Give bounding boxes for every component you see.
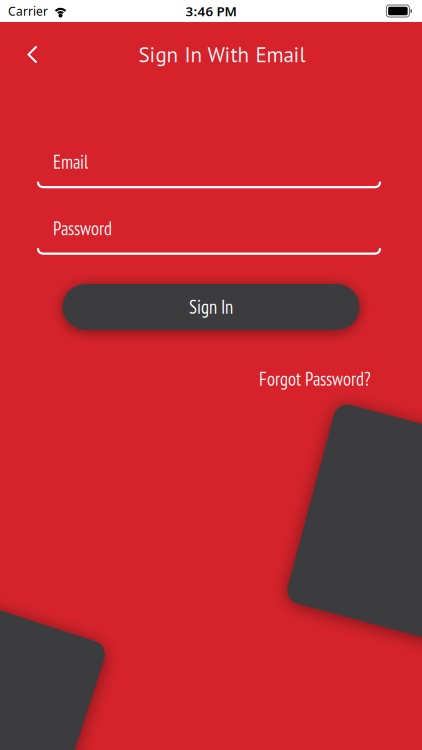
button[interactable]: Sign In <box>62 284 359 330</box>
staticText: Carrier <box>8 3 48 19</box>
staticText: Sign In <box>189 295 233 319</box>
staticText: Sign In With Email <box>138 41 305 68</box>
staticText: Password <box>53 216 112 240</box>
button[interactable]: Password <box>37 216 381 255</box>
button[interactable]: Forgot Password? <box>259 367 371 391</box>
staticText: Forgot Password? <box>259 367 371 391</box>
staticText: Email <box>53 150 88 174</box>
button[interactable]: Back <box>0 31 38 77</box>
button[interactable]: Email <box>37 150 381 188</box>
staticText: 3:46 PM <box>185 2 236 20</box>
